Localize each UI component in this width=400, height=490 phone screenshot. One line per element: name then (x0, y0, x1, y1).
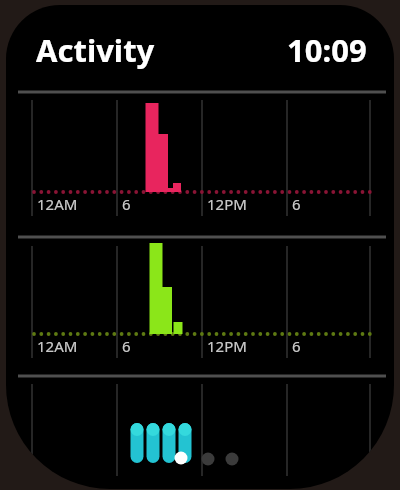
button[interactable]: Activity charts (0, 0, 400, 490)
